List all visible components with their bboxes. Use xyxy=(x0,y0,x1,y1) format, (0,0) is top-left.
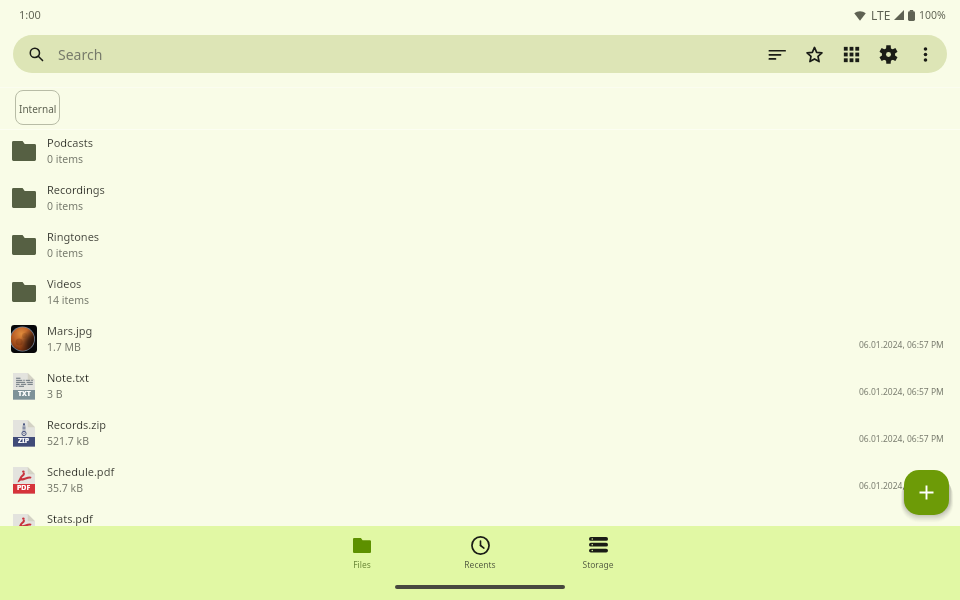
button[interactable]: Recordings xyxy=(0,177,960,224)
button[interactable]: Videos xyxy=(0,271,960,318)
staticText: LTE xyxy=(871,7,891,23)
staticText: 06.01.2024, 06:57 PM xyxy=(859,480,944,492)
button[interactable]: Add xyxy=(904,470,949,515)
staticText: TXT xyxy=(18,389,31,399)
staticText: 06.01.2024, 06:57 PM xyxy=(859,339,944,351)
staticText: Videos xyxy=(47,276,82,291)
staticText: Ringtones xyxy=(47,229,100,244)
button[interactable]: PDF xyxy=(0,459,960,506)
staticText: 1:00 xyxy=(19,7,41,22)
button[interactable]: Podcasts xyxy=(0,130,960,177)
button[interactable]: Internal xyxy=(15,90,60,125)
button[interactable]: ZIP xyxy=(0,412,960,459)
button[interactable]: Ringtones xyxy=(0,224,960,271)
button[interactable]: Sort xyxy=(759,35,796,73)
staticText: 14 items xyxy=(47,293,90,307)
staticText: Internal xyxy=(19,102,57,116)
staticText: Podcasts xyxy=(47,135,94,150)
staticText: 0 items xyxy=(47,246,84,260)
staticText: Mars.jpg xyxy=(47,323,93,338)
staticText: Stats.pdf xyxy=(47,511,93,526)
button[interactable]: Settings xyxy=(870,35,907,73)
staticText: 521.7 kB xyxy=(47,434,89,448)
staticText: Schedule.pdf xyxy=(47,464,115,479)
button[interactable]: Search xyxy=(13,35,947,73)
staticText: Storage xyxy=(582,559,614,571)
button[interactable]: Grid view xyxy=(833,35,870,73)
staticText: 100% xyxy=(919,8,946,22)
staticText: 1.7 MB xyxy=(47,340,81,354)
staticText: Records.zip xyxy=(47,417,107,432)
staticText: 3 B xyxy=(47,387,63,401)
button[interactable]: Mars.jpg xyxy=(0,318,960,365)
staticText: 06.01.2024, 06:57 PM xyxy=(859,386,944,398)
staticText: Recents xyxy=(464,559,496,571)
staticText: 0 items xyxy=(47,199,84,213)
staticText: Search xyxy=(58,45,103,64)
button[interactable]: Files xyxy=(303,527,421,579)
button[interactable]: PDF xyxy=(0,506,960,553)
staticText: 35.7 kB xyxy=(47,481,83,495)
button[interactable]: Storage xyxy=(539,527,657,579)
staticText: Recordings xyxy=(47,182,105,197)
button[interactable]: Favorites xyxy=(796,35,833,73)
staticText: Note.txt xyxy=(47,370,89,385)
staticText: 06.01.2024, 06:57 PM xyxy=(859,433,944,445)
button[interactable]: More options xyxy=(907,35,944,73)
staticText: ZIP xyxy=(18,436,30,446)
staticText: 0 items xyxy=(47,152,84,166)
button[interactable]: TXT xyxy=(0,365,960,412)
staticText: Files xyxy=(353,559,371,571)
button[interactable]: Recents xyxy=(421,527,539,579)
staticText: PDF xyxy=(17,483,31,493)
